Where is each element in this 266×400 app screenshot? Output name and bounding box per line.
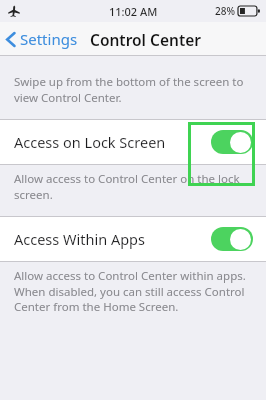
staticText: Settings xyxy=(20,29,78,49)
staticText: Swipe up from the bottom of the screen t… xyxy=(14,74,248,105)
staticText: Access Within Apps xyxy=(14,229,145,249)
button[interactable]: Toggle xyxy=(211,227,253,251)
staticText: 28% xyxy=(215,4,235,18)
button[interactable]: Access Within Apps xyxy=(0,217,266,261)
staticText: 11:02 AM xyxy=(109,4,158,19)
button[interactable]: Settings xyxy=(0,25,82,53)
staticText: Access on Lock Screen xyxy=(14,132,166,152)
button[interactable]: Access on Lock Screen xyxy=(0,120,266,164)
staticText: Allow access to Control Center on the lo… xyxy=(14,171,248,202)
staticText: Allow access to Control Center within ap… xyxy=(14,268,248,314)
staticText: Control Center xyxy=(90,29,201,50)
button[interactable]: Toggle xyxy=(211,130,253,154)
